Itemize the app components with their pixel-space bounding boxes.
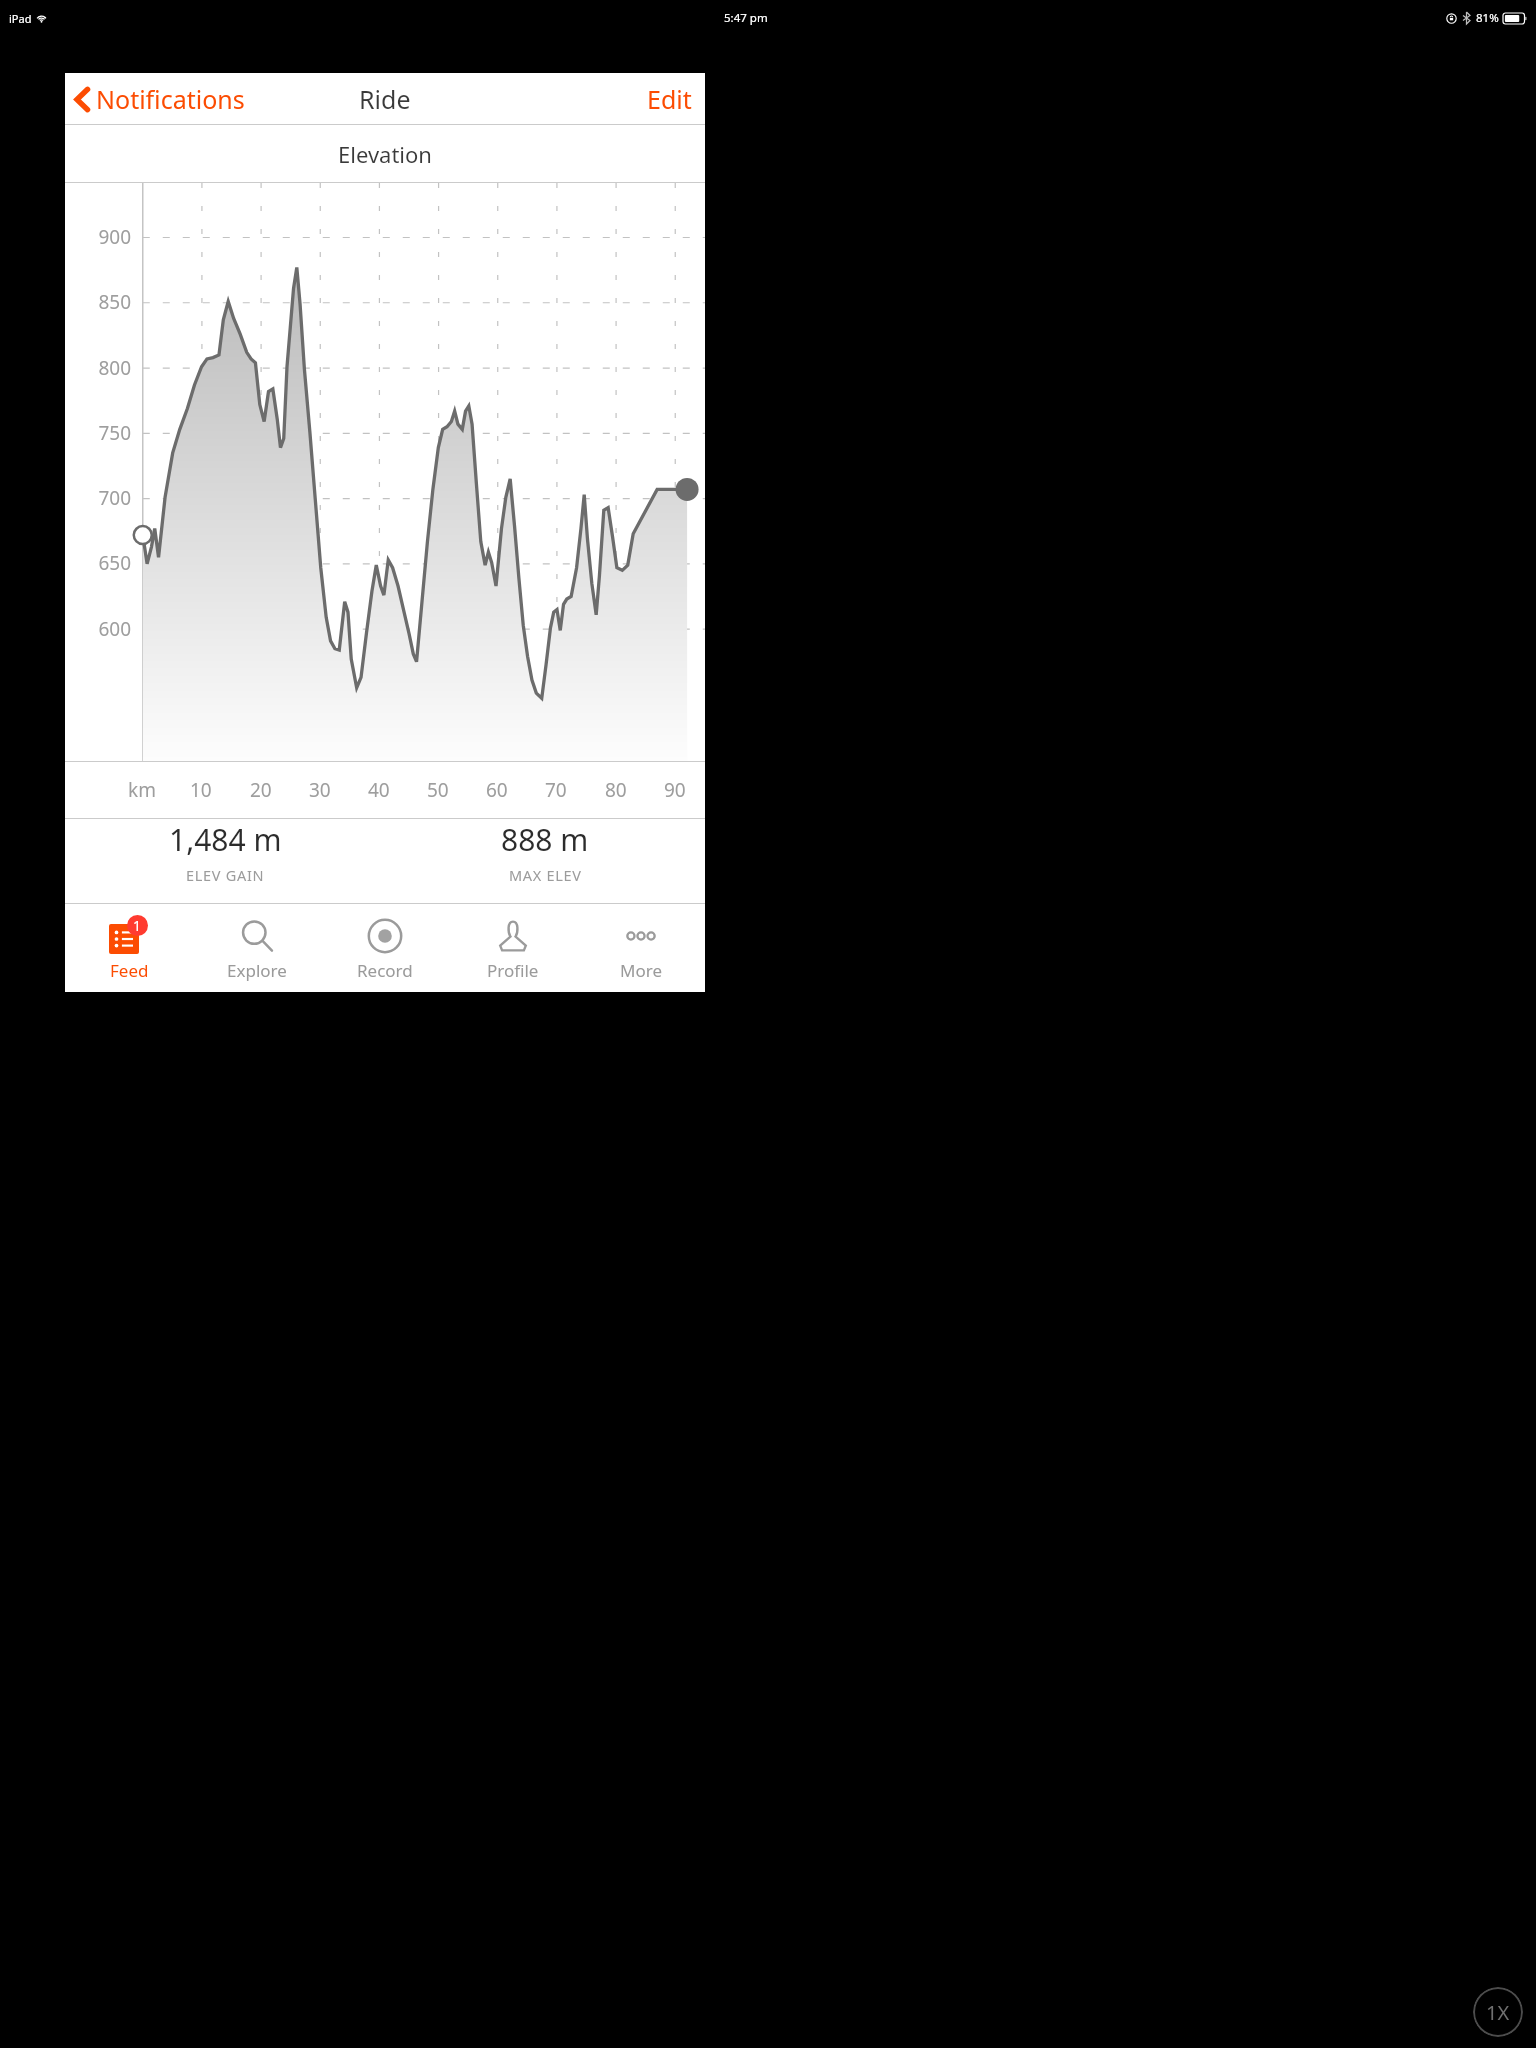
other: Record: [367, 918, 403, 954]
button[interactable]: Edit: [634, 74, 705, 124]
staticText: 40: [368, 777, 390, 803]
staticText: 60: [486, 777, 508, 803]
staticText: 20: [250, 777, 272, 803]
staticText: 90: [664, 777, 686, 803]
staticText: Feed: [110, 959, 149, 982]
staticText: Record: [357, 959, 413, 982]
staticText: 70: [545, 777, 567, 803]
staticText: 700: [65, 485, 131, 511]
staticText: 10: [190, 777, 212, 803]
button[interactable]: 888 m: [385, 819, 705, 885]
staticText: 650: [65, 550, 131, 576]
staticText: Elevation: [338, 139, 432, 169]
staticText: Edit: [647, 82, 692, 116]
staticText: 888 m: [501, 819, 589, 860]
button[interactable]: 1: [65, 909, 193, 987]
staticText: Notifications: [96, 82, 245, 116]
button[interactable]: Explore: [193, 909, 321, 987]
button[interactable]: Record: [321, 909, 449, 987]
staticText: Explore: [227, 959, 287, 982]
staticText: 1X: [1486, 1999, 1510, 2026]
staticText: Ride: [359, 82, 411, 116]
staticText: 30: [309, 777, 331, 803]
staticText: 600: [65, 616, 131, 642]
other: More: [623, 918, 659, 954]
staticText: iPad: [9, 11, 32, 26]
staticText: ELEV GAIN: [186, 865, 265, 885]
staticText: Profile: [487, 959, 539, 982]
button[interactable]: Profile: [449, 909, 577, 987]
staticText: km: [128, 777, 156, 803]
staticText: More: [620, 959, 662, 982]
staticText: 900: [65, 224, 131, 250]
button[interactable]: More: [577, 909, 705, 987]
button[interactable]: 1,484 m: [65, 819, 385, 885]
staticText: MAX ELEV: [509, 865, 582, 885]
staticText: 800: [65, 355, 131, 381]
staticText: 850: [65, 289, 131, 315]
staticText: 5:47 pm: [724, 10, 768, 26]
other: Explore: [240, 919, 274, 953]
staticText: 1: [133, 916, 142, 935]
button[interactable]: Notifications: [65, 76, 253, 122]
button[interactable]: Zoom 1X: [1473, 1987, 1523, 2037]
staticText: 80: [605, 777, 627, 803]
other: Profile: [497, 920, 529, 952]
staticText: 81%: [1476, 10, 1499, 26]
staticText: 750: [65, 420, 131, 446]
staticText: 1,484 m: [169, 819, 282, 860]
staticText: 50: [427, 777, 449, 803]
